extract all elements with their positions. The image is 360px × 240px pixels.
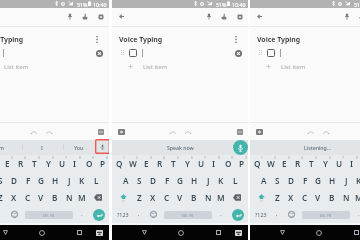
button[interactable]: E bbox=[0, 155, 14, 172]
button[interactable]: You bbox=[65, 140, 93, 155]
button[interactable]: Home bbox=[174, 226, 188, 239]
button[interactable]: Z bbox=[0, 189, 7, 206]
button[interactable]: C bbox=[21, 189, 35, 206]
button[interactable]: List item bbox=[143, 61, 193, 71]
button[interactable]: M bbox=[75, 189, 89, 206]
button[interactable]: , bbox=[132, 206, 146, 223]
button[interactable]: EN . FR bbox=[25, 211, 73, 219]
button[interactable] bbox=[127, 62, 134, 70]
button[interactable]: Back bbox=[137, 226, 151, 239]
button[interactable]: Gesture bbox=[355, 10, 360, 23]
button[interactable]: Screen capture bbox=[233, 10, 246, 23]
button[interactable]: D bbox=[146, 172, 160, 189]
button[interactable]: M bbox=[352, 189, 360, 206]
button[interactable]: O bbox=[82, 155, 96, 172]
button[interactable]: V bbox=[34, 189, 48, 206]
button[interactable]: Enter bbox=[93, 209, 105, 221]
button[interactable]: H bbox=[325, 172, 339, 189]
button[interactable]: J bbox=[339, 172, 353, 189]
button[interactable]: Gesture bbox=[217, 10, 230, 23]
button[interactable]: N bbox=[339, 189, 353, 206]
button[interactable]: I bbox=[23, 140, 61, 155]
button[interactable]: X bbox=[284, 189, 298, 206]
button[interactable]: Home bbox=[35, 226, 49, 239]
button[interactable]: B bbox=[48, 189, 62, 206]
button[interactable]: Clipboard bbox=[254, 127, 264, 137]
button[interactable] bbox=[265, 62, 272, 70]
button[interactable]: Undo bbox=[28, 127, 39, 138]
button[interactable]: J bbox=[62, 172, 76, 189]
button[interactable]: F bbox=[21, 172, 35, 189]
button[interactable]: Y bbox=[180, 155, 194, 172]
button[interactable]: E bbox=[277, 155, 291, 172]
button[interactable]: V bbox=[173, 189, 187, 206]
button[interactable]: Recent apps bbox=[349, 226, 360, 239]
button[interactable]: S bbox=[132, 172, 146, 189]
button[interactable]: M bbox=[214, 189, 228, 206]
button[interactable]: Stop listening bbox=[233, 140, 248, 155]
button[interactable]: . bbox=[75, 206, 89, 223]
button[interactable]: Pin bbox=[202, 10, 215, 23]
button[interactable]: Screen capture bbox=[94, 10, 107, 23]
button[interactable]: N bbox=[62, 189, 76, 206]
button[interactable]: Emoji bbox=[284, 206, 298, 223]
button[interactable]: G bbox=[173, 172, 187, 189]
button[interactable]: Redo bbox=[182, 127, 193, 138]
button[interactable]: Q bbox=[112, 155, 126, 172]
button[interactable]: Backspace bbox=[227, 189, 247, 206]
button[interactable]: Shift bbox=[113, 189, 133, 206]
button[interactable]: G bbox=[311, 172, 325, 189]
button[interactable]: Clear bbox=[94, 48, 104, 58]
button[interactable]: Back bbox=[0, 226, 12, 239]
button[interactable]: Recent apps bbox=[72, 226, 86, 239]
button[interactable]: Clear bbox=[233, 48, 243, 58]
button[interactable]: Pin bbox=[340, 10, 353, 23]
button[interactable]: Navigate up bbox=[253, 10, 266, 23]
button[interactable]: List item bbox=[281, 61, 331, 71]
button[interactable]: D bbox=[7, 172, 21, 189]
button[interactable]: Voice input bbox=[95, 139, 109, 154]
button[interactable]: J bbox=[201, 172, 215, 189]
button[interactable]: Change keyboard bbox=[232, 226, 244, 239]
button[interactable]: Change keyboard bbox=[93, 226, 105, 239]
button[interactable]: I bbox=[345, 155, 359, 172]
button[interactable]: K bbox=[214, 172, 228, 189]
button[interactable]: S bbox=[0, 172, 7, 189]
button[interactable]: R bbox=[153, 155, 167, 172]
button[interactable]: G bbox=[34, 172, 48, 189]
button[interactable]: U bbox=[55, 155, 69, 172]
button[interactable]: ?123 bbox=[251, 206, 271, 223]
button[interactable]: Pin bbox=[63, 10, 76, 23]
button[interactable]: I bbox=[68, 155, 82, 172]
button[interactable]: EN . FR bbox=[302, 211, 350, 219]
button[interactable]: . bbox=[214, 206, 228, 223]
button[interactable]: W bbox=[126, 155, 140, 172]
button[interactable]: K bbox=[352, 172, 360, 189]
button[interactable]: Navigate up bbox=[115, 10, 128, 23]
button[interactable]: Redo bbox=[320, 127, 331, 138]
button[interactable]: Undo bbox=[167, 127, 178, 138]
button[interactable]: Emoji bbox=[7, 206, 21, 223]
button[interactable]: U bbox=[194, 155, 208, 172]
button[interactable]: Undo bbox=[305, 127, 316, 138]
button[interactable]: Redo bbox=[43, 127, 54, 138]
button[interactable]: C bbox=[298, 189, 312, 206]
button[interactable]: L bbox=[228, 172, 242, 189]
button[interactable]: X bbox=[146, 189, 160, 206]
button[interactable]: S bbox=[270, 172, 284, 189]
button[interactable]: U bbox=[332, 155, 346, 172]
button[interactable]: Checkbox bbox=[128, 48, 138, 58]
button[interactable]: Checkbox bbox=[266, 48, 276, 58]
button[interactable]: P bbox=[235, 155, 248, 172]
button[interactable]: I'm bbox=[0, 140, 22, 155]
button[interactable]: H bbox=[48, 172, 62, 189]
button[interactable]: F bbox=[298, 172, 312, 189]
button[interactable]: R bbox=[291, 155, 305, 172]
button[interactable]: K bbox=[75, 172, 89, 189]
button[interactable]: Gesture bbox=[78, 10, 91, 23]
button[interactable]: A bbox=[257, 172, 271, 189]
button[interactable]: List item bbox=[4, 61, 54, 71]
button[interactable]: E bbox=[139, 155, 153, 172]
